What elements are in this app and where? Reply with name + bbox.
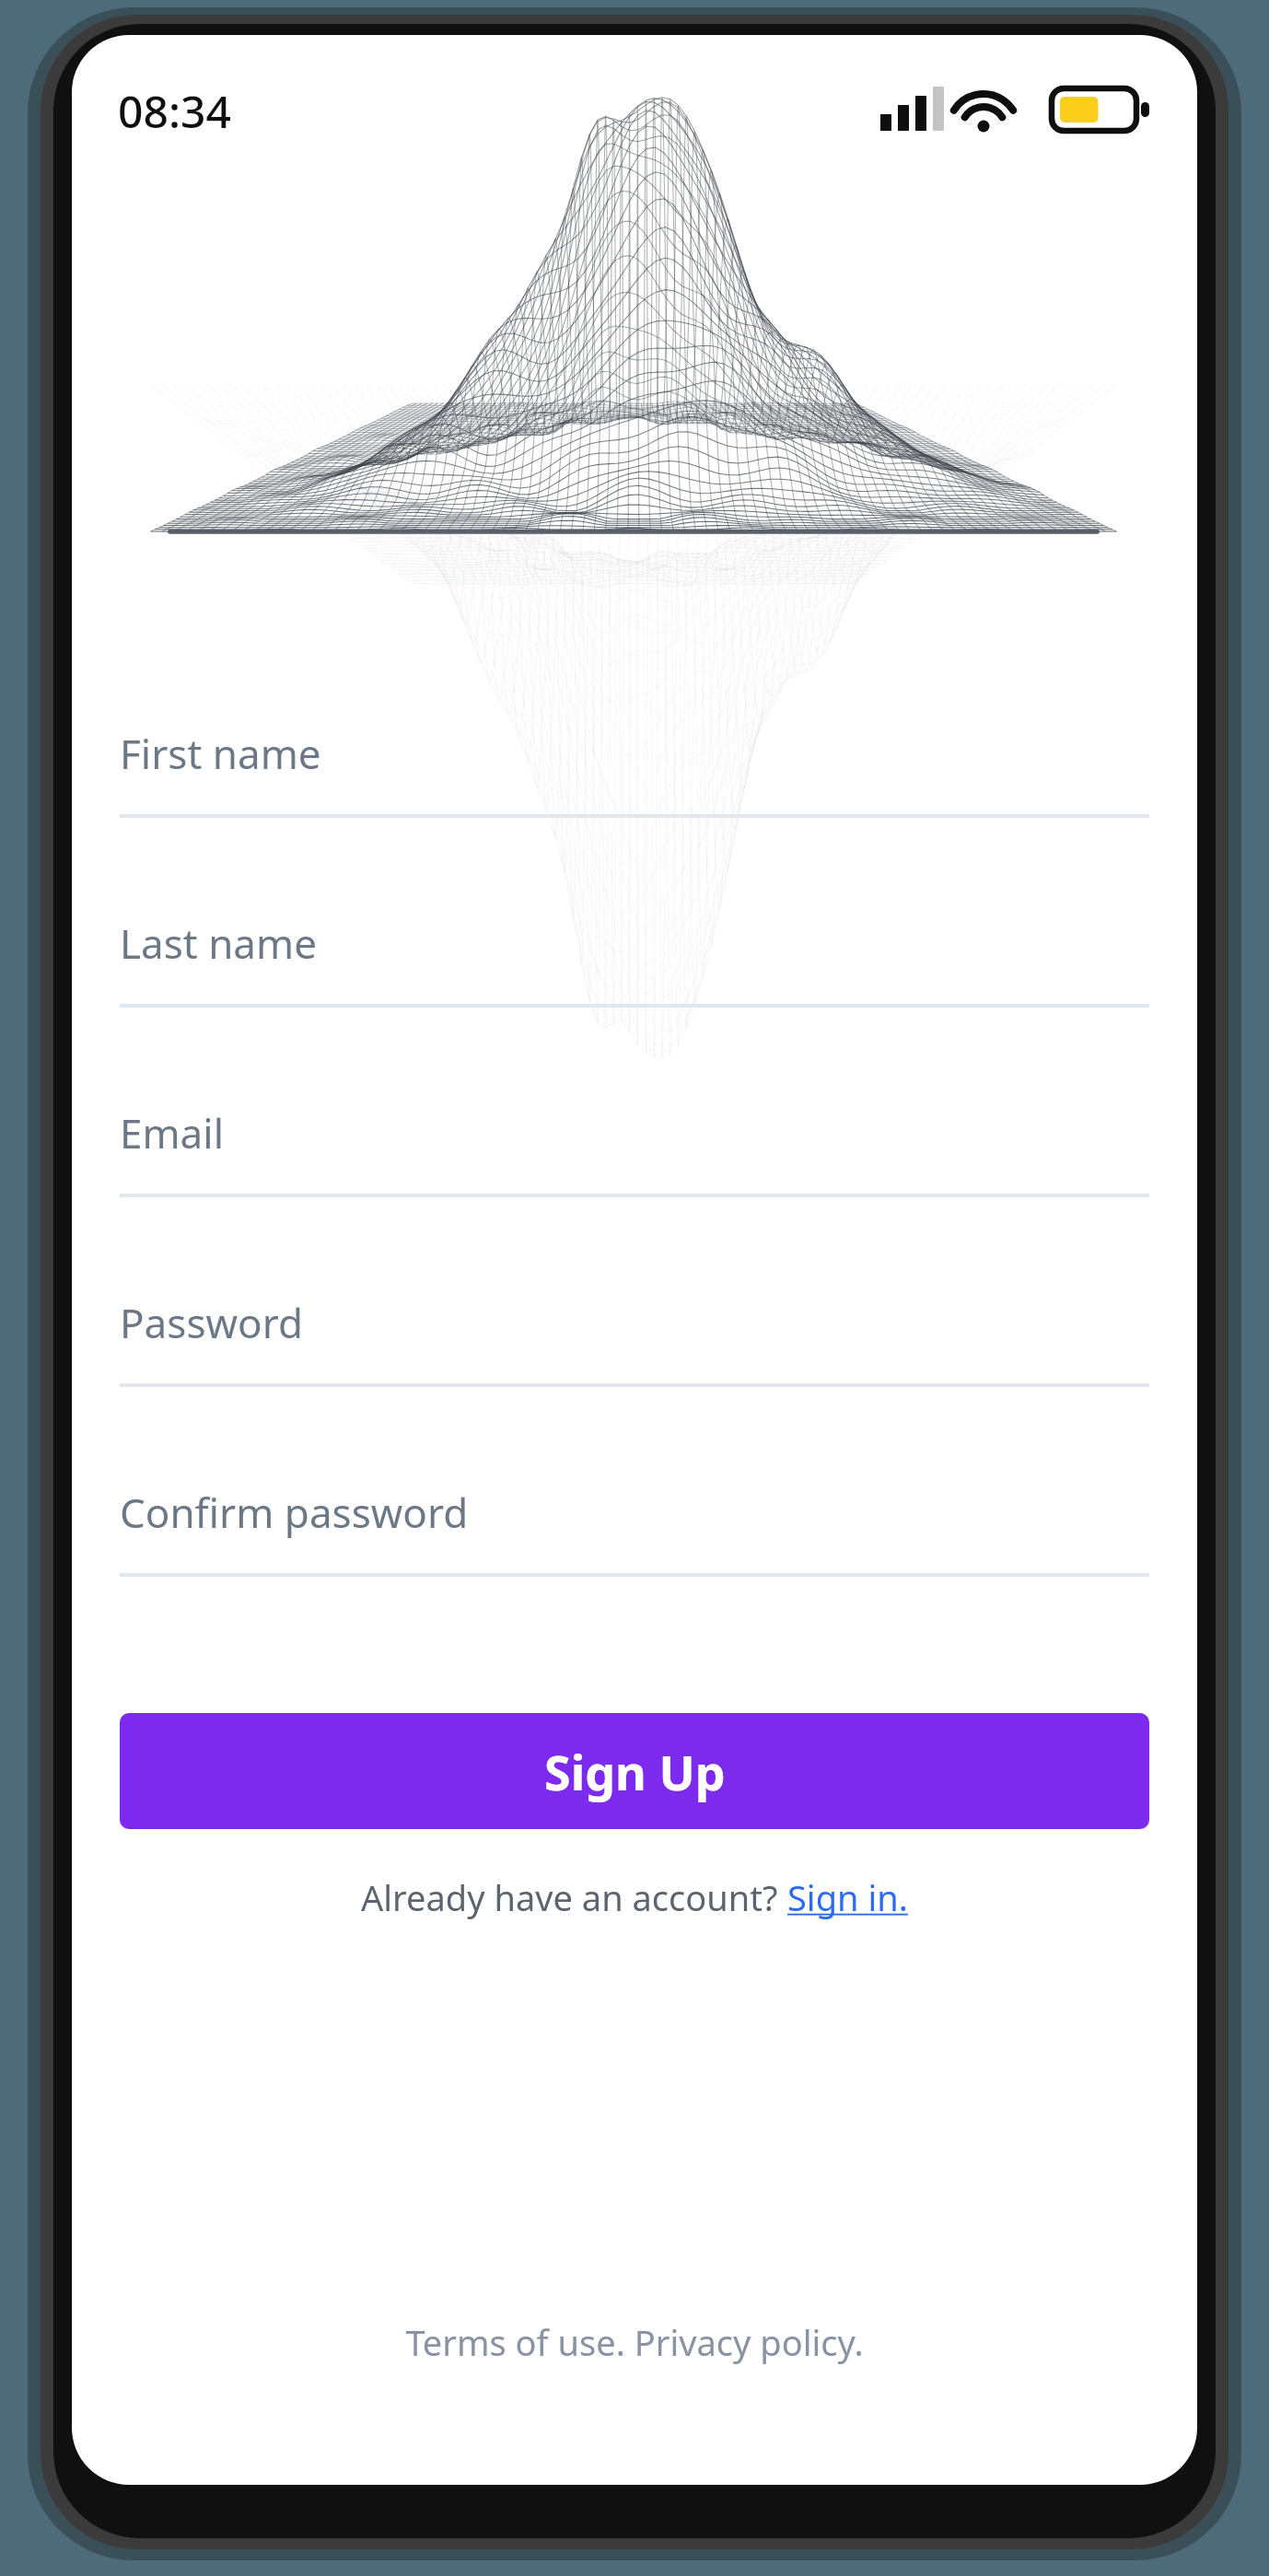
- staticText: Last name: [120, 915, 317, 971]
- staticText: Confirm password: [120, 1485, 469, 1540]
- button[interactable]: Terms of use. Privacy policy.: [72, 2310, 1197, 2374]
- staticText: Already have an account?: [361, 1873, 787, 1921]
- button[interactable]: Last name: [120, 893, 1149, 1008]
- staticText: Password: [120, 1295, 304, 1350]
- button[interactable]: Email: [120, 1083, 1149, 1197]
- staticText: First name: [120, 726, 321, 781]
- button[interactable]: Password: [120, 1273, 1149, 1387]
- button[interactable]: First name: [120, 704, 1149, 818]
- staticText: Sign in.: [787, 1873, 908, 1921]
- button[interactable]: Sign in.: [787, 1873, 908, 1921]
- staticText: 08:34: [118, 81, 231, 141]
- button[interactable]: Confirm password: [120, 1463, 1149, 1577]
- staticText: Sign Up: [544, 1739, 726, 1804]
- button[interactable]: Sign Up: [120, 1713, 1149, 1829]
- staticText: Email: [120, 1105, 224, 1160]
- staticText: Terms of use. Privacy policy.: [405, 2318, 864, 2366]
